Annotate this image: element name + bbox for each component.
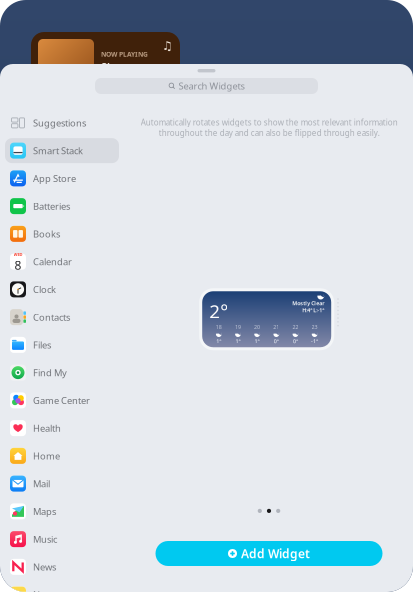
staticText: 1° [216,338,221,345]
staticText: 0° [274,338,279,345]
button[interactable]: App Store [0,164,141,192]
staticText: Health [33,422,61,434]
staticText: 22 [292,323,298,331]
staticText: ♫ [162,39,173,53]
button[interactable]: News [0,553,141,581]
staticText: Add Widget [241,545,310,561]
staticText: Find My [33,366,67,379]
staticText: 8 [14,257,21,273]
button[interactable]: Game Center [0,386,141,414]
button[interactable]: Batteries [0,192,141,220]
button[interactable]: Files [0,331,141,359]
staticText: 21 [273,323,279,331]
staticText: WED [13,252,22,257]
staticText: NOW PLAYING [101,50,148,59]
staticText: -1° [311,338,318,345]
staticText: H:4° L:-1° [302,307,324,314]
staticText: Home [33,450,60,462]
staticText: 19 [235,323,241,331]
button[interactable]: Health [0,414,141,442]
staticText: Mail [33,477,50,490]
button[interactable]: Find My [0,359,141,387]
staticText: Clock [33,283,56,296]
staticText: 1° [255,338,260,345]
staticText: Books [33,228,60,240]
button[interactable]: Mail [0,470,141,498]
staticText: 18 [216,323,222,331]
staticText: Mostly Clear [292,300,324,307]
staticText: Sleep Away [101,60,129,88]
staticText: Batteries [33,200,70,212]
staticText: Suggestions [33,117,86,129]
button[interactable]: Suggestions [0,109,141,137]
staticText: Game Center [33,394,90,407]
staticText: Music [33,533,57,545]
button[interactable]: Maps [0,497,141,525]
staticText: 1° [235,338,240,345]
button[interactable]: Music [0,525,141,553]
staticText: Automatically rotates widgets to show th… [140,117,397,138]
staticText: Files [33,339,51,351]
button[interactable]: Contacts [0,303,141,331]
staticText: 20 [254,323,260,331]
staticText: Maps [33,505,56,518]
staticText: 0° [293,338,298,345]
staticText: Contacts [33,311,70,323]
button[interactable]: Notes [0,581,141,592]
staticText: 23 [312,323,318,331]
button[interactable]: Home [0,442,141,470]
button[interactable]: Books [0,220,141,248]
staticText: Calendar [33,255,72,268]
button[interactable]: Smart Stack [0,137,141,165]
button[interactable]: WED [0,248,141,276]
staticText: 2° [209,299,228,323]
staticText: Search Widgets [178,80,244,92]
staticText: Smart Stack [33,144,83,157]
staticText: Notes [33,588,58,592]
button[interactable]: Clock [0,275,141,303]
staticText: App Store [33,172,76,185]
staticText: News [33,561,56,573]
button[interactable]: Add Widget [155,541,382,566]
